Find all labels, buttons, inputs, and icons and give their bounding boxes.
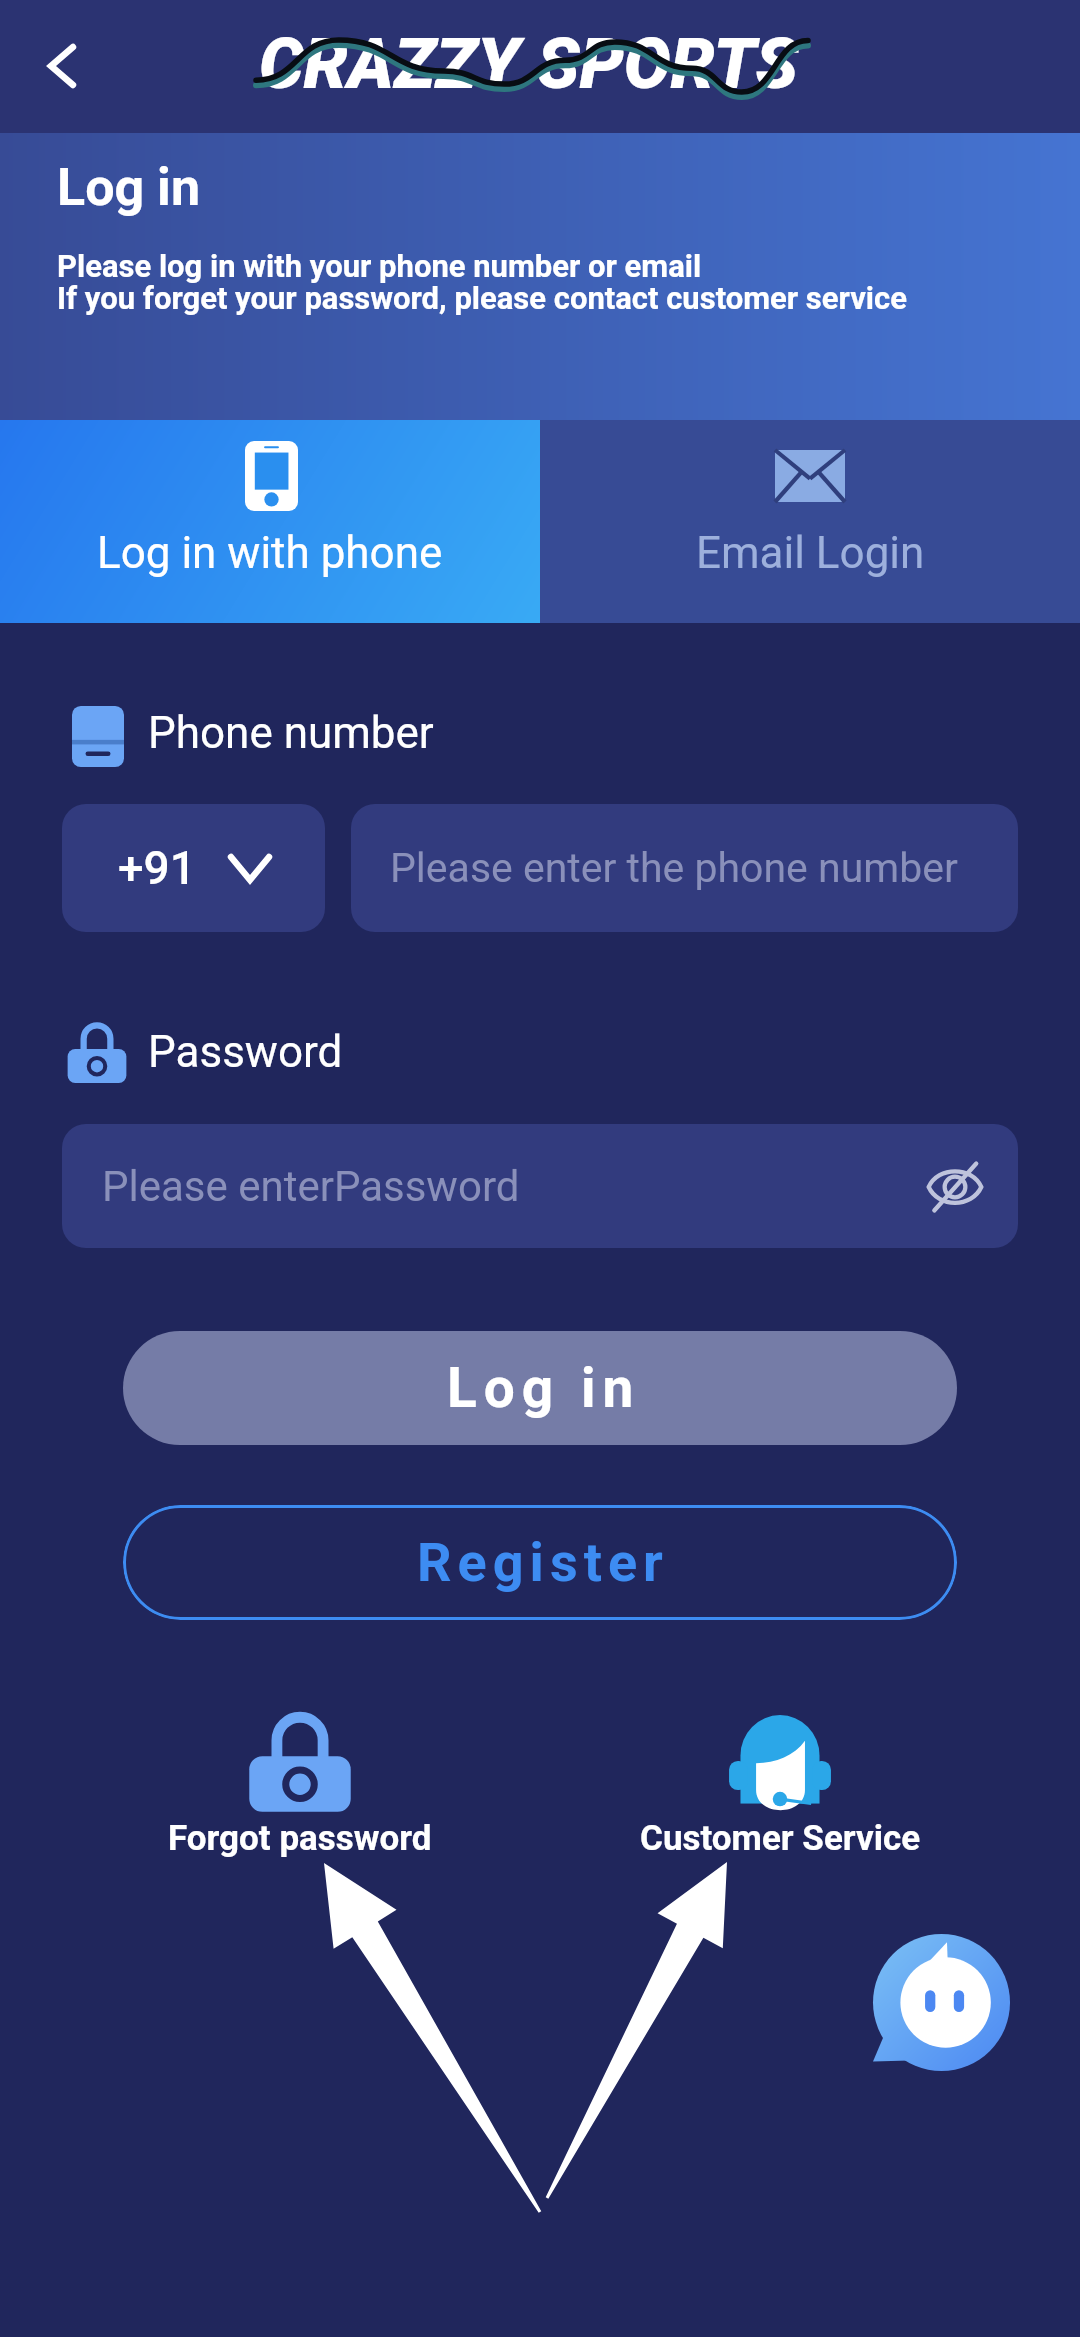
button[interactable]: +91 — [62, 804, 325, 932]
button[interactable]: Register — [123, 1505, 957, 1620]
button[interactable]: Back — [22, 26, 102, 106]
staticText: Forgot password — [168, 1818, 432, 1859]
staticText: Log in with phone — [97, 527, 443, 579]
staticText: Email Login — [696, 527, 925, 579]
button[interactable]: Email Login — [540, 420, 1080, 623]
button[interactable]: Customer Service — [610, 1705, 950, 1865]
button[interactable]: Please enterPassword — [62, 1124, 1018, 1248]
button[interactable]: Show password — [918, 1149, 992, 1223]
staticText: Password — [148, 1026, 343, 1078]
staticText: Please log in with your phone number or … — [57, 248, 702, 284]
button[interactable]: Chat support — [873, 1934, 1010, 2071]
button[interactable]: Please enter the phone number — [351, 804, 1018, 932]
staticText: Please enter the phone number — [390, 844, 958, 892]
staticText: If you forget your password, please cont… — [57, 280, 907, 316]
staticText: Please enterPassword — [102, 1162, 520, 1211]
staticText: CRAZZY SPORTS — [259, 23, 798, 105]
button[interactable]: Forgot password — [130, 1705, 470, 1865]
staticText: +91 — [118, 841, 196, 895]
staticText: Log in — [57, 157, 201, 218]
staticText: Customer Service — [640, 1818, 921, 1859]
staticText: Log in — [447, 1356, 641, 1420]
staticText: Register — [417, 1531, 669, 1594]
staticText: Phone number — [148, 707, 434, 759]
button[interactable]: Log in — [123, 1331, 957, 1445]
button[interactable]: Log in with phone — [0, 420, 540, 623]
